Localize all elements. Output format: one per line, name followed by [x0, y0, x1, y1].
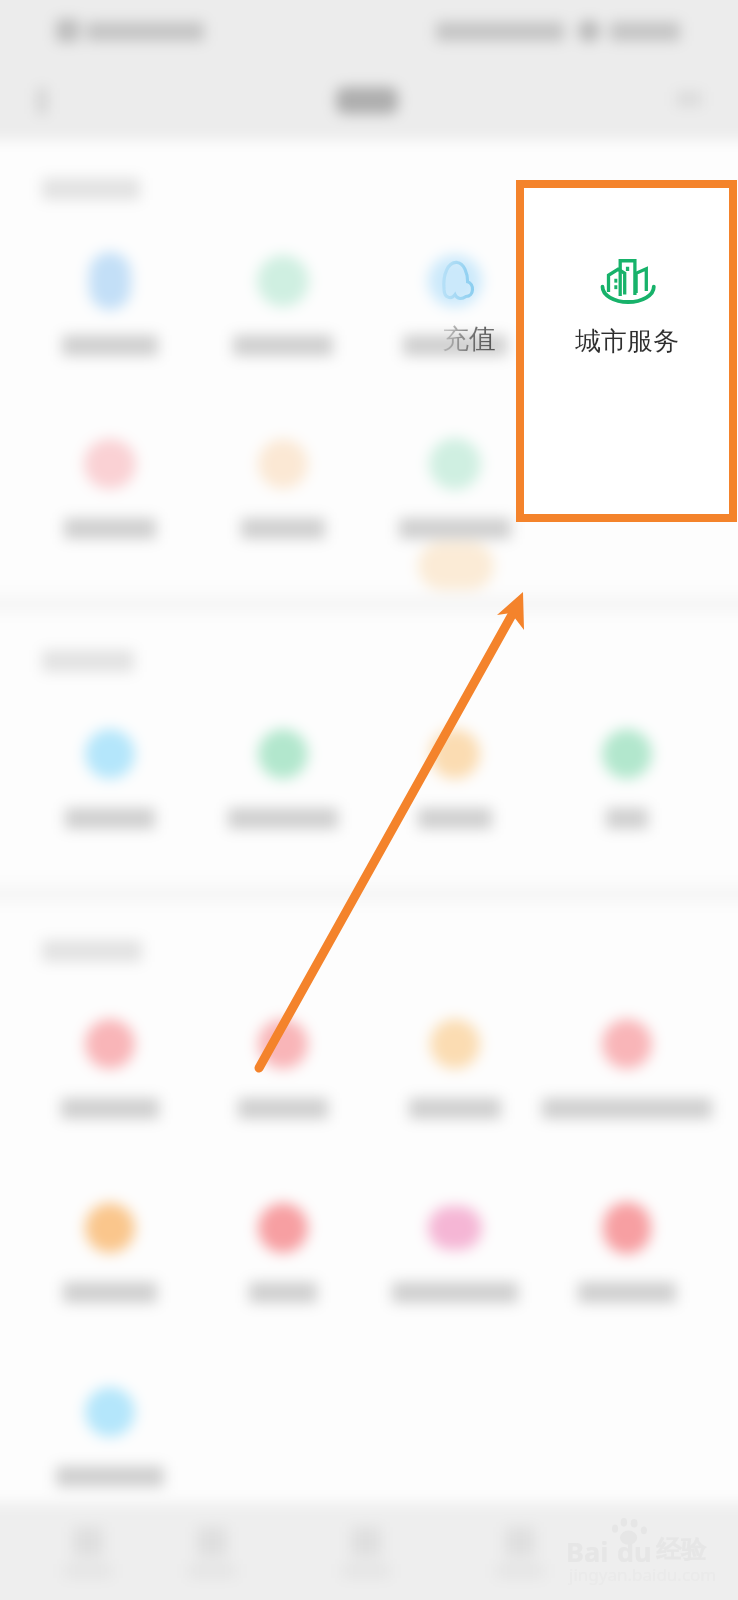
staticText: 经验	[656, 1534, 706, 1565]
staticText: du	[617, 1533, 652, 1570]
button[interactable]: 城市服务	[516, 180, 737, 522]
staticText: 充值	[442, 322, 496, 356]
staticText: 城市服务	[562, 325, 692, 358]
staticText: Bai	[566, 1533, 609, 1570]
